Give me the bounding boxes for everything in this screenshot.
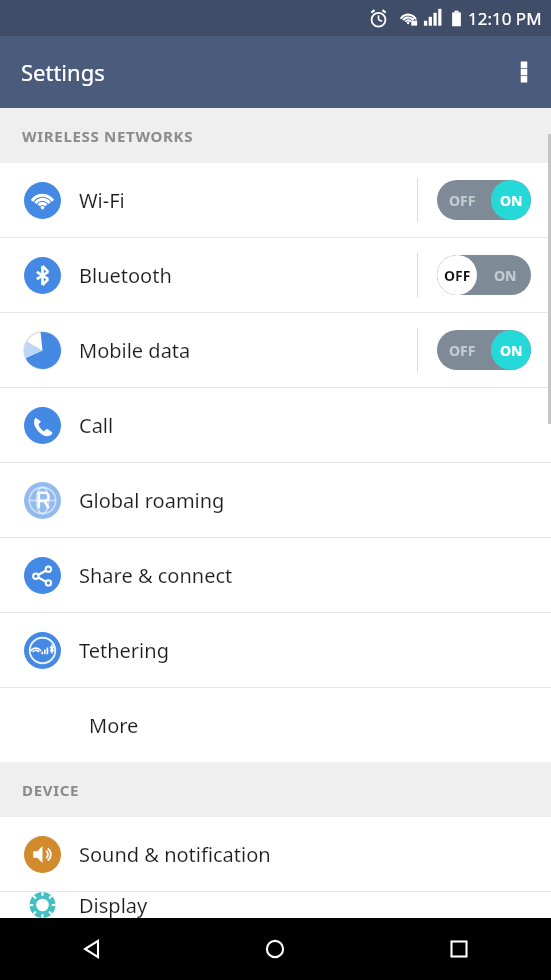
staticText: More <box>89 712 139 739</box>
button[interactable]: Global roaming <box>0 463 551 537</box>
button[interactable]: OFF <box>437 180 531 220</box>
button[interactable]: Share & connect <box>0 538 551 612</box>
staticText: ON <box>494 341 517 360</box>
button[interactable]: Back <box>0 918 183 980</box>
button[interactable]: Bluetooth <box>0 238 551 312</box>
staticText: Share & connect <box>79 562 551 589</box>
staticText: DEVICE <box>22 780 80 800</box>
staticText: OFF <box>444 266 471 285</box>
staticText: Mobile data <box>79 337 417 364</box>
staticText: ON <box>500 191 523 210</box>
staticText: Tethering <box>79 637 551 664</box>
button[interactable]: OFF <box>437 330 531 370</box>
staticText: ON <box>494 191 517 210</box>
staticText: ON <box>500 341 523 360</box>
button[interactable]: More <box>0 688 551 762</box>
button[interactable]: Wi-Fi <box>0 163 551 237</box>
staticText: OFF <box>449 191 476 210</box>
staticText: Sound & notification <box>79 841 551 868</box>
staticText: Wi-Fi <box>79 187 417 214</box>
staticText: ON <box>494 266 517 285</box>
button[interactable]: Sound & notification <box>0 817 551 891</box>
staticText: Call <box>79 412 551 439</box>
button[interactable]: More options <box>497 36 551 108</box>
staticText: Display <box>79 892 551 918</box>
staticText: OFF <box>449 341 476 360</box>
staticText: Settings <box>21 57 105 87</box>
button[interactable]: Tethering <box>0 613 551 687</box>
staticText: Bluetooth <box>79 262 417 289</box>
button[interactable]: OFF <box>437 255 531 295</box>
button[interactable]: Call <box>0 388 551 462</box>
button[interactable]: Home <box>183 918 367 980</box>
staticText: Global roaming <box>79 487 551 514</box>
staticText: WIRELESS NETWORKS <box>22 126 194 146</box>
button[interactable]: Display <box>0 892 551 918</box>
staticText: OFF <box>449 266 476 285</box>
button[interactable]: Mobile data <box>0 313 551 387</box>
staticText: 12:10 PM <box>468 7 542 30</box>
button[interactable]: Recent apps <box>367 918 551 980</box>
